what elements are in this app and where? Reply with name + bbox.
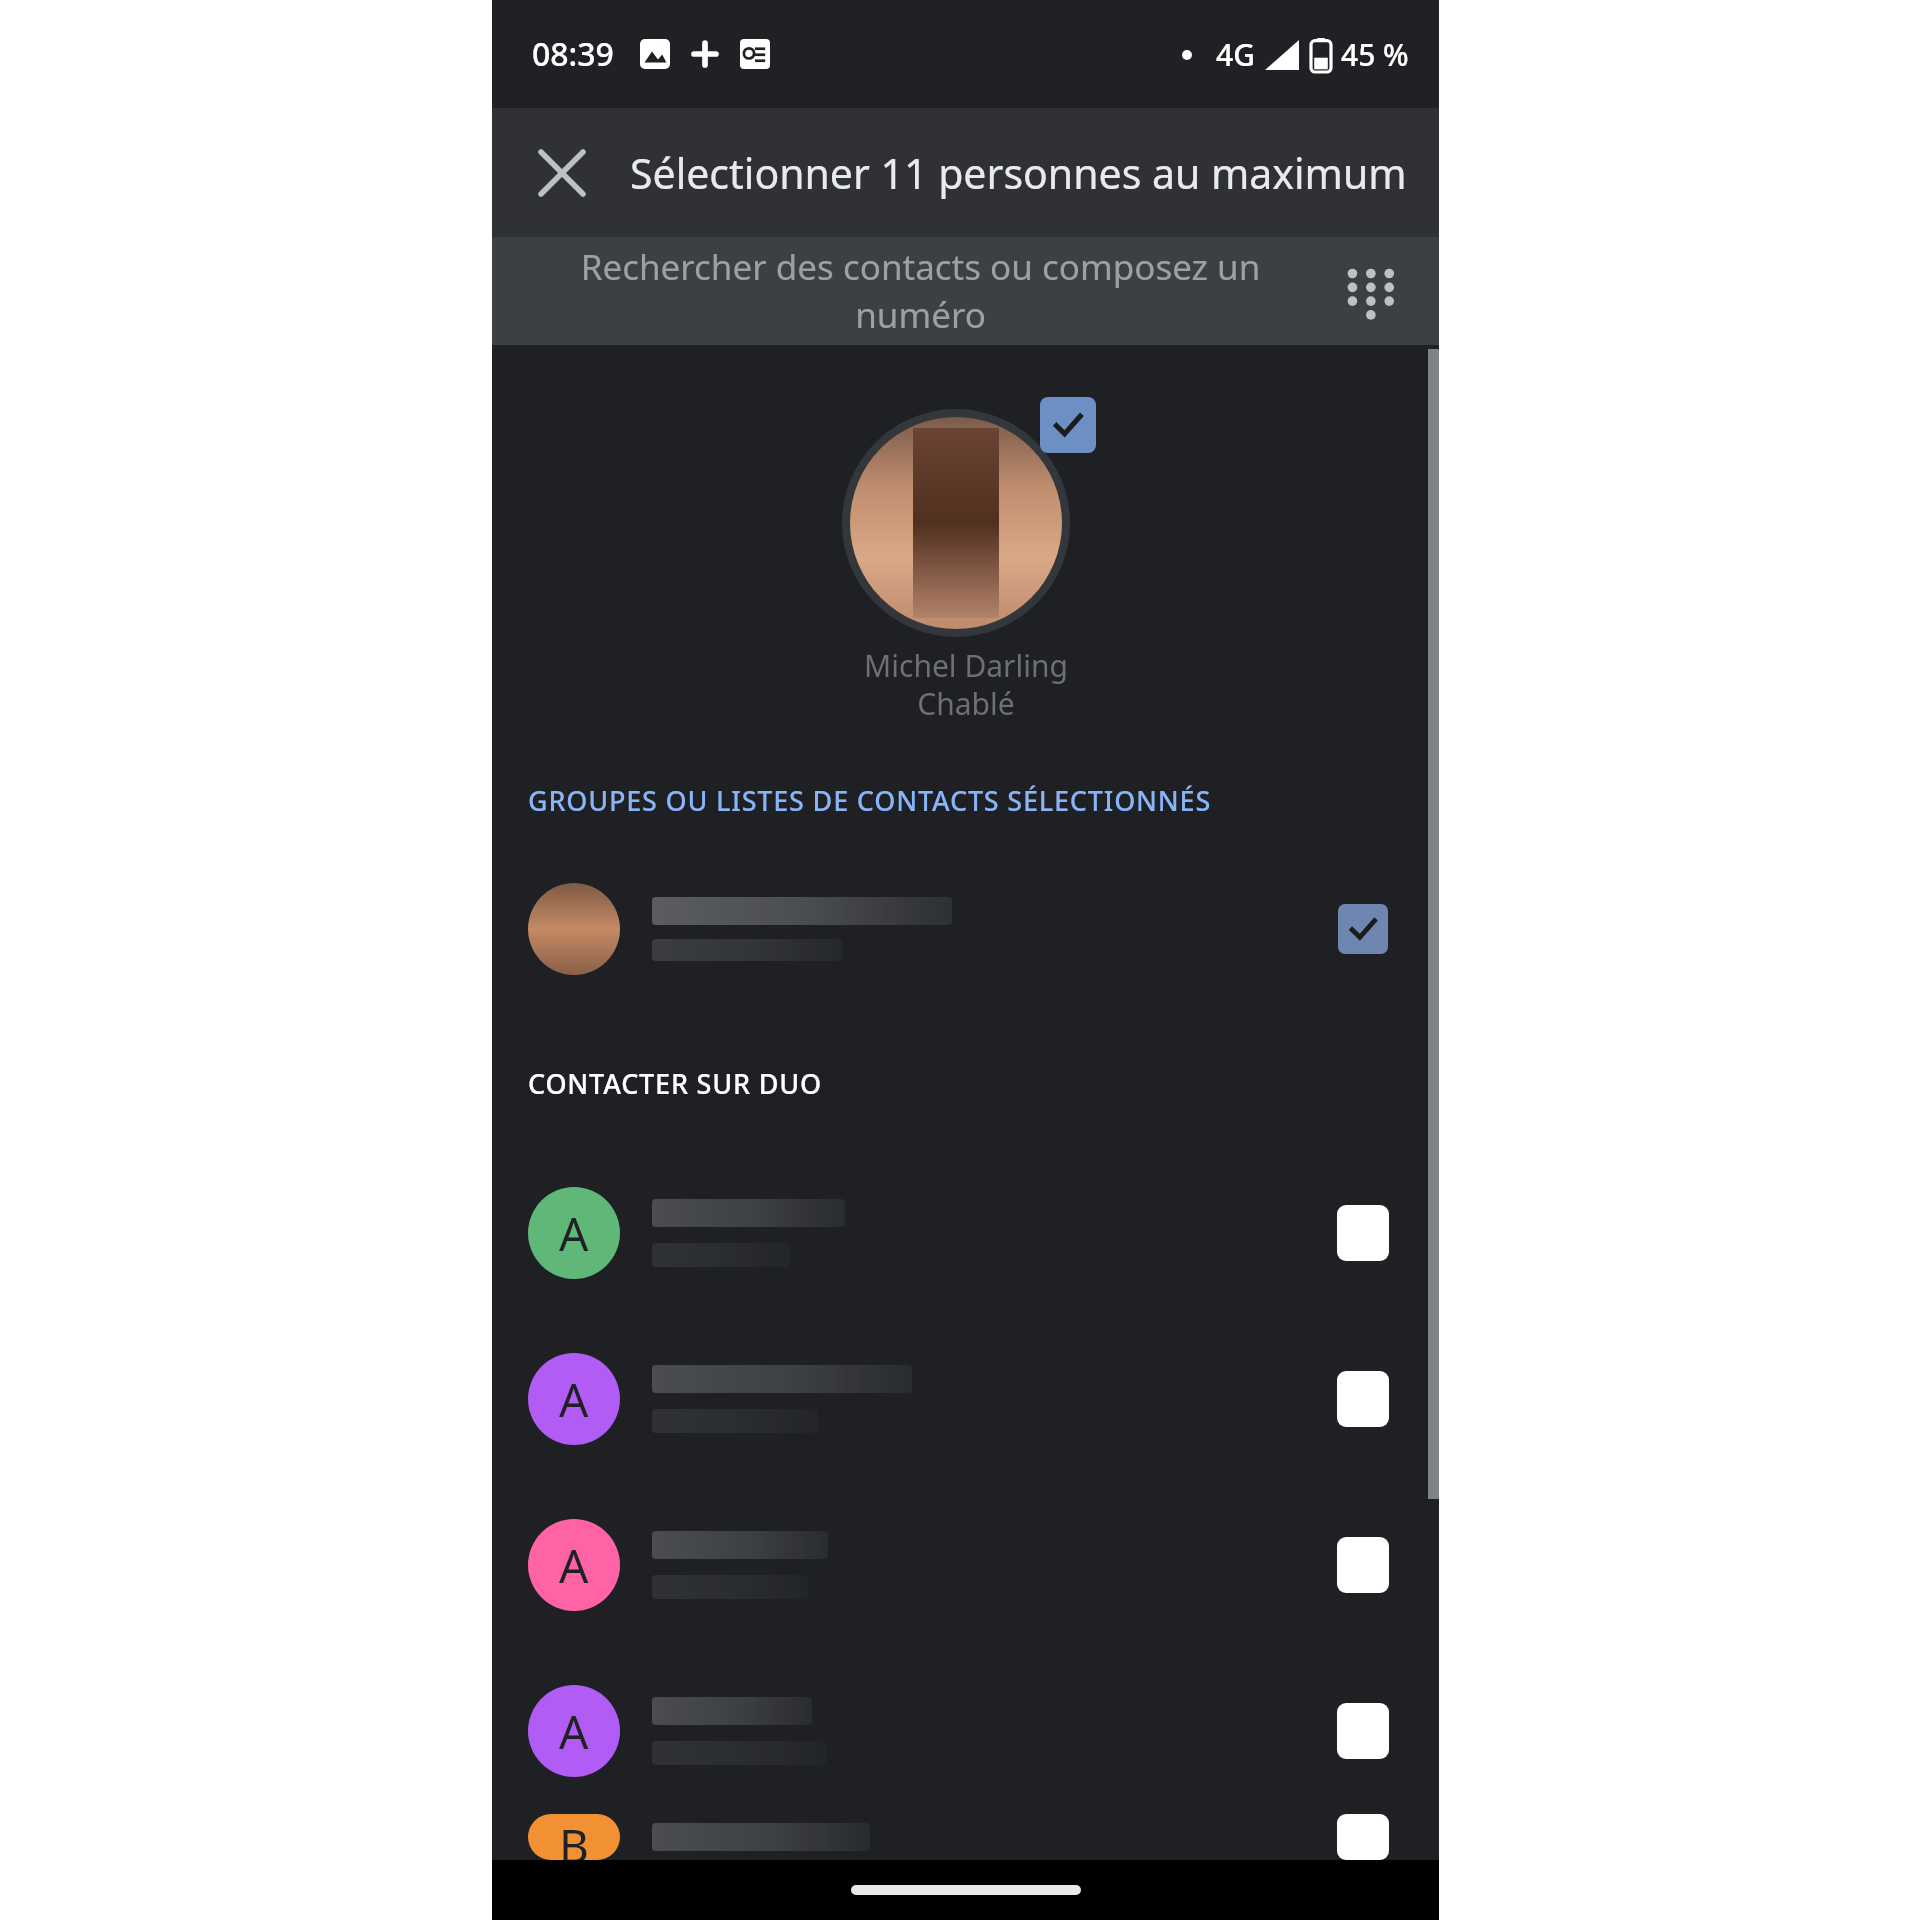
button[interactable]: Michel Darling Chablé [492,397,1439,724]
button[interactable]: Clavier [1327,249,1411,333]
staticText: Michel Darling Chablé [864,645,1068,724]
button[interactable]: A [492,1482,1439,1648]
button[interactable]: A [492,1648,1439,1814]
staticText: GROUPES OU LISTES DE CONTACTS SÉLECTIONN… [528,782,1212,819]
staticText: CONTACTER SUR DUO [528,1065,822,1102]
staticText: 4G [1216,34,1255,75]
staticText: A [559,1700,589,1763]
staticText: A [559,1534,589,1597]
button[interactable]: A [492,1150,1439,1316]
staticText: B [559,1814,589,1860]
button[interactable]: B [492,1814,1439,1860]
staticText: A [559,1368,589,1431]
staticText: Sélectionner 11 personnes au maximum [630,145,1407,201]
button[interactable]: Rechercher des contacts ou composez un n… [492,237,1439,345]
button[interactable] [492,869,1439,989]
staticText: A [559,1202,589,1265]
button[interactable]: Fermer [514,125,610,221]
staticText: 08:39 [532,32,614,76]
staticText: 45 % [1341,34,1409,75]
staticText: Rechercher des contacts ou composez un n… [522,243,1319,339]
button[interactable]: A [492,1316,1439,1482]
